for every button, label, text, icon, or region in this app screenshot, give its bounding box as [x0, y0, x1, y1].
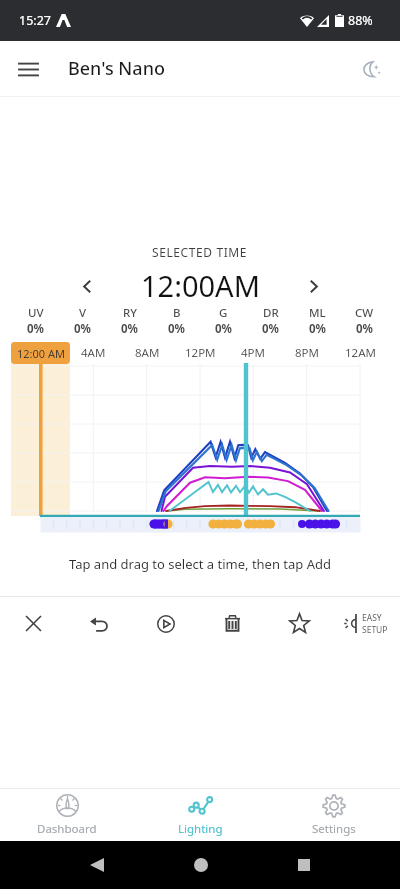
staticText: 8AM [135, 345, 160, 361]
button[interactable]: Dashboard [0, 789, 134, 841]
staticText: RY [123, 305, 137, 321]
button[interactable]: Lighting [134, 789, 267, 841]
staticText: 88% [348, 12, 373, 29]
staticText: CW [355, 305, 374, 321]
staticText: G [219, 305, 228, 321]
staticText: SETUP [362, 624, 388, 636]
button[interactable]: Previous [70, 269, 104, 303]
staticText: 12PM [185, 345, 216, 361]
staticText: 0% [168, 321, 185, 337]
button[interactable]: Close [0, 597, 66, 650]
staticText: 0% [121, 321, 138, 337]
staticText: 4AM [81, 345, 106, 361]
staticText: 0% [262, 321, 279, 337]
staticText: Settings [312, 821, 356, 837]
staticText: B [173, 305, 181, 321]
button[interactable]: Menu [8, 49, 48, 89]
staticText: UV [28, 305, 44, 321]
button[interactable]: Next [296, 269, 330, 303]
button[interactable]: Favorite [266, 597, 333, 650]
staticText: EASY [362, 612, 382, 624]
staticText: Tap and drag to select a time, then tap … [0, 555, 400, 573]
staticText: SELECTED TIME [152, 244, 248, 260]
staticText: 15:27 [19, 12, 51, 29]
staticText: DR [263, 305, 279, 321]
staticText: 12:00AM [141, 266, 260, 305]
staticText: 0% [356, 321, 373, 337]
staticText: Dashboard [37, 821, 97, 837]
button[interactable]: Settings [267, 789, 400, 841]
staticText: 0% [215, 321, 232, 337]
button[interactable]: Play [132, 597, 199, 650]
button[interactable]: Delete [199, 597, 266, 650]
staticText: 4PM [241, 345, 265, 361]
staticText: 0% [74, 321, 91, 337]
staticText: Lighting [178, 821, 223, 837]
button[interactable]: 12:00 AM [11, 342, 70, 364]
button[interactable]: Undo [66, 597, 132, 650]
staticText: V [79, 305, 87, 321]
staticText: ML [309, 305, 326, 321]
staticText: 12AM [345, 345, 376, 361]
staticText: 0% [309, 321, 326, 337]
button[interactable]: Night mode [349, 48, 391, 90]
button[interactable]: EASY [333, 597, 400, 650]
staticText: 8PM [295, 345, 319, 361]
staticText: 12:00 AM [17, 346, 65, 361]
staticText: 0% [27, 321, 44, 337]
staticText: Ben's Nano [68, 56, 165, 81]
